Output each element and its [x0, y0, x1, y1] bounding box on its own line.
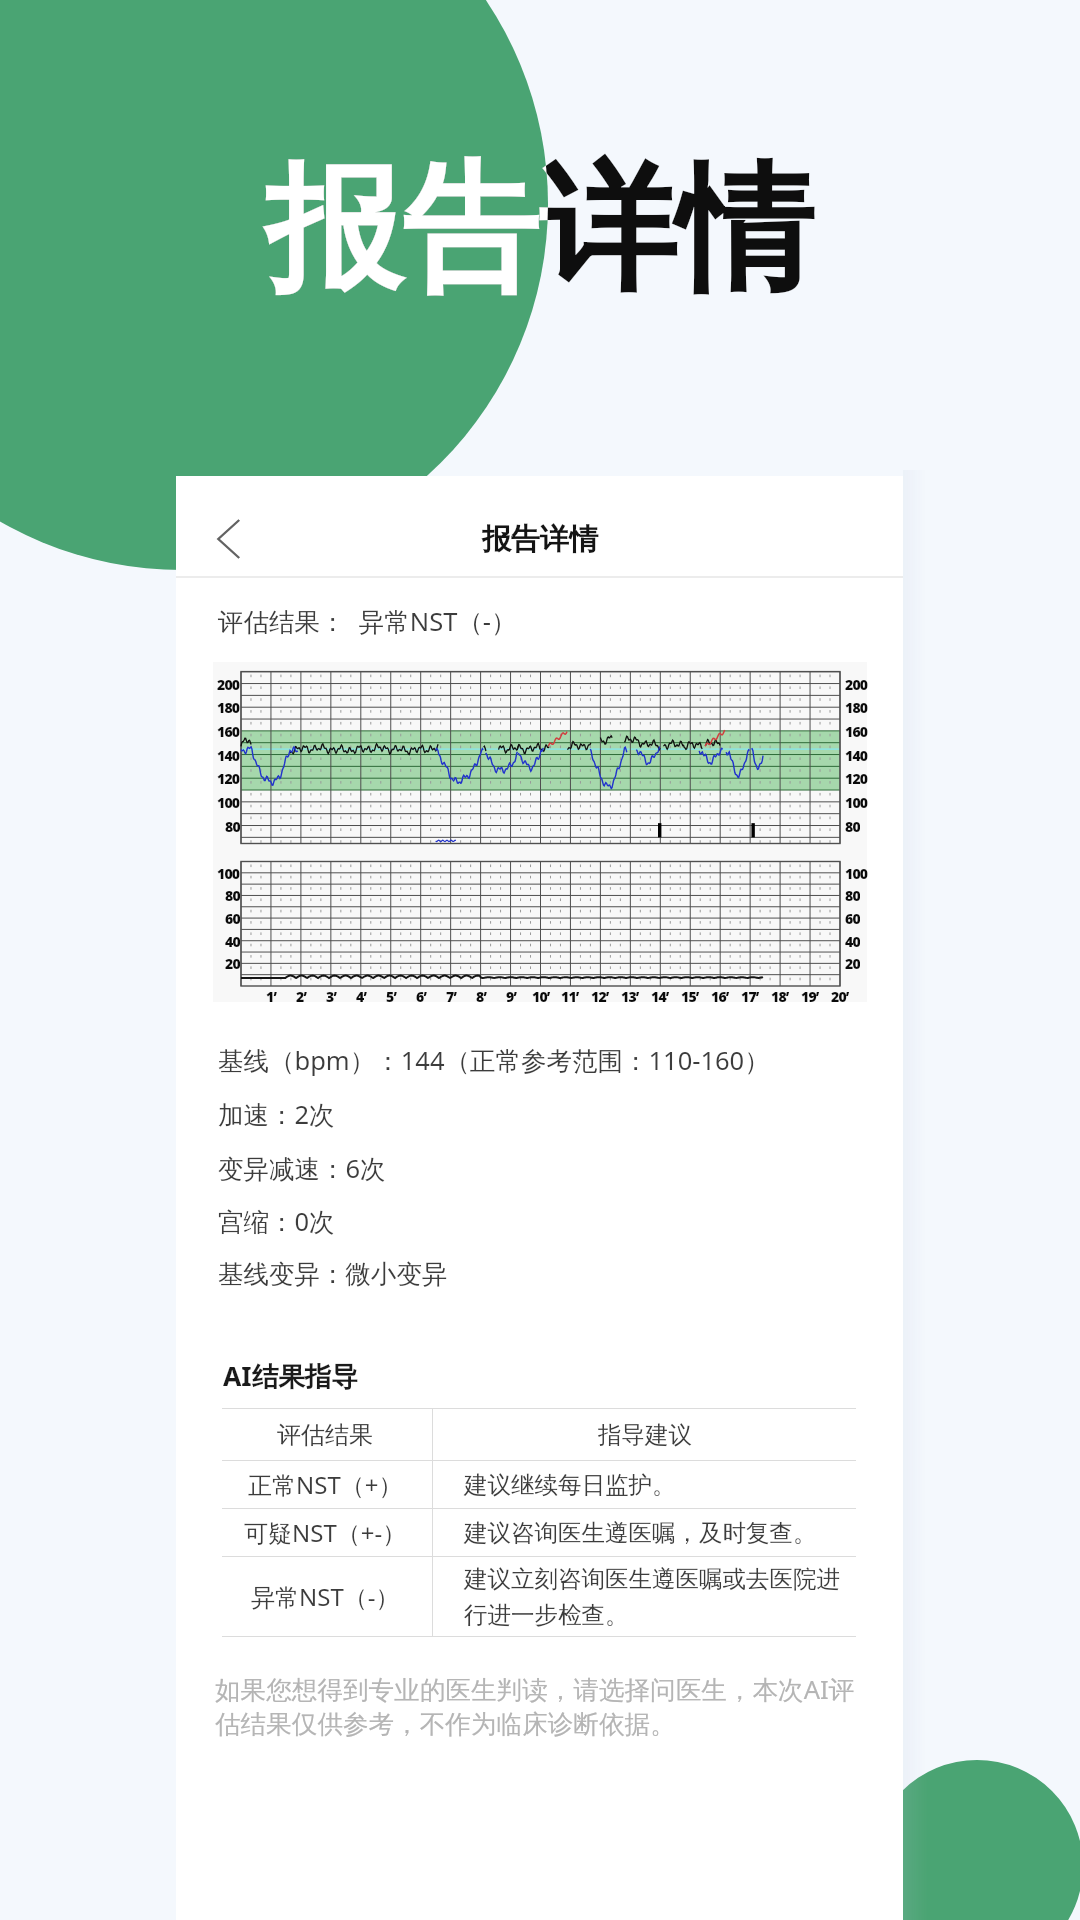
staticText: 17’	[741, 987, 759, 1006]
staticText: 10’	[532, 987, 550, 1006]
staticText: 80	[845, 817, 860, 835]
staticText: 140	[217, 746, 240, 764]
staticText: 基线变异：微小变异	[218, 1258, 448, 1290]
staticText: 报告详情	[265, 144, 813, 317]
staticText: 异常NST（-）	[251, 1580, 400, 1613]
staticText: 40	[225, 932, 240, 950]
staticText: 建议立刻咨询医生遵医嘱或去医院进行进一步检查。	[464, 1564, 850, 1630]
staticText: 20	[845, 954, 860, 972]
staticText: 100	[217, 793, 240, 811]
staticText: 19’	[801, 987, 819, 1006]
staticText: 13’	[621, 987, 639, 1006]
staticText: 正常NST（+）	[248, 1468, 403, 1501]
staticText: 100	[845, 864, 868, 882]
staticText: 60	[225, 909, 240, 927]
staticText: 20’	[831, 987, 849, 1006]
staticText: 100	[845, 793, 868, 811]
staticText: 变异减速：6次	[218, 1151, 386, 1186]
staticText: 3’	[326, 987, 337, 1006]
staticText: 120	[217, 769, 240, 787]
staticText: 180	[845, 698, 868, 716]
staticText: 2’	[296, 987, 307, 1006]
staticText: 基线（bpm）：144（正常参考范围：110-160）	[218, 1043, 770, 1078]
staticText: 如果您想得到专业的医生判读，请选择问医生，本次AI评估结果仅供参考，不作为临床诊…	[215, 1672, 863, 1741]
staticText: 加速：2次	[218, 1097, 335, 1132]
staticText: 100	[217, 864, 240, 882]
staticText: 6’	[416, 987, 427, 1006]
staticText: 报告详情	[482, 521, 598, 558]
staticText: AI结果指导	[223, 1358, 358, 1394]
staticText: 200	[845, 675, 868, 693]
staticText: 20	[225, 954, 240, 972]
staticText: 7’	[446, 987, 457, 1006]
staticText: 报告详情	[265, 144, 813, 317]
staticText: 建议继续每日监护。	[464, 1470, 676, 1500]
staticText: 4’	[356, 987, 367, 1006]
staticText: 40	[845, 932, 860, 950]
staticText: 建议咨询医生遵医嘱，及时复查。	[464, 1518, 817, 1548]
staticText: 15’	[681, 987, 699, 1006]
staticText: 评估结果： 异常NST（-）	[218, 604, 517, 639]
staticText: 12’	[591, 987, 609, 1006]
staticText: 14’	[651, 987, 669, 1006]
staticText: 60	[845, 909, 860, 927]
staticText: 140	[845, 746, 868, 764]
staticText: 120	[845, 769, 868, 787]
staticText: 80	[845, 886, 860, 904]
staticText: 11’	[561, 987, 579, 1006]
staticText: 9’	[506, 987, 517, 1006]
staticText: 可疑NST（+-）	[244, 1516, 407, 1549]
staticText: 180	[217, 698, 240, 716]
staticText: 8’	[476, 987, 487, 1006]
staticText: 160	[845, 722, 868, 740]
staticText: 80	[225, 886, 240, 904]
staticText: 200	[217, 675, 240, 693]
staticText: 18’	[771, 987, 789, 1006]
button[interactable]: 返回	[197, 507, 261, 571]
staticText: 评估结果	[277, 1420, 373, 1450]
staticText: 80	[225, 817, 240, 835]
staticText: 1’	[266, 987, 277, 1006]
staticText: 宫缩：0次	[218, 1204, 335, 1239]
staticText: 5’	[386, 987, 397, 1006]
staticText: 16’	[711, 987, 729, 1006]
staticText: 指导建议	[598, 1420, 692, 1450]
staticText: 160	[217, 722, 240, 740]
